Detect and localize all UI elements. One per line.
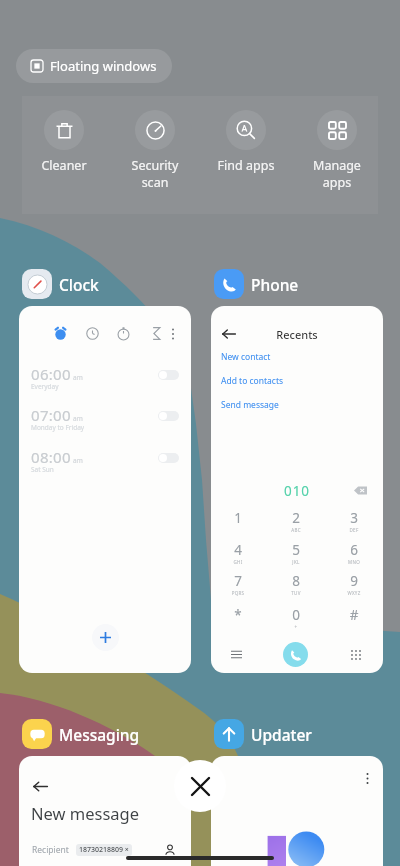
staticText: 5 (276, 541, 316, 559)
staticText: 6 (334, 541, 374, 559)
staticText: Monday to Friday (31, 423, 85, 432)
staticText: ABC (276, 527, 316, 533)
staticText: am (73, 414, 83, 423)
button[interactable]: 0 (276, 606, 316, 634)
button[interactable]: Find apps (202, 110, 290, 174)
staticText: 0 (276, 606, 316, 624)
staticText: Phone (251, 274, 299, 295)
button[interactable]: Add alarm (92, 624, 119, 651)
button[interactable]: 9 (334, 572, 374, 600)
button[interactable]: 07:00 (19, 405, 191, 443)
button[interactable]: Call (283, 642, 308, 667)
staticText: Recipient (32, 844, 69, 856)
staticText: Clock (59, 274, 99, 295)
staticText: PQRS (218, 590, 258, 596)
button[interactable]: * (218, 606, 258, 634)
staticText: TUV (276, 590, 316, 596)
button[interactable]: 6 (334, 541, 374, 569)
button[interactable]: Messaging (22, 719, 140, 749)
button[interactable]: Contacts (162, 842, 178, 858)
button[interactable]: 1 (218, 509, 258, 537)
staticText: Recents (211, 327, 383, 342)
button[interactable]: Back (218, 323, 240, 345)
staticText: 1 (218, 509, 258, 527)
button[interactable]: Close all (174, 760, 226, 812)
staticText: Security scan (111, 157, 199, 191)
staticText: 010 (211, 482, 383, 500)
button[interactable]: 4 (218, 541, 258, 569)
staticText: 3 (334, 509, 374, 527)
staticText: Updater (251, 724, 312, 745)
staticText: am (73, 456, 83, 465)
staticText: Cleaner (20, 157, 108, 174)
button[interactable]: Toggle alarm (158, 370, 179, 380)
button[interactable]: 2 (276, 509, 316, 537)
staticText: Find apps (202, 157, 290, 174)
button[interactable]: More options (166, 327, 180, 341)
staticText: MNO (334, 559, 374, 565)
button[interactable]: Tab (112, 322, 134, 344)
button[interactable]: Back (28, 774, 52, 798)
button[interactable]: # (334, 606, 374, 634)
staticText: 2 (276, 509, 316, 527)
button[interactable]: Back (19, 756, 191, 866)
button[interactable]: Toggle alarm (158, 411, 179, 421)
staticText: 9 (334, 572, 374, 590)
staticText: 08:00 (31, 447, 71, 467)
button[interactable]: New contact (221, 351, 271, 363)
staticText: 07:00 (31, 405, 71, 425)
staticText: WXYZ (334, 590, 374, 596)
staticText: New message (31, 802, 140, 824)
button[interactable]: 06:00 (19, 364, 191, 402)
button[interactable]: Menu (226, 644, 247, 665)
button[interactable]: Tab (81, 322, 103, 344)
staticText: 18730218809 × (79, 845, 129, 855)
staticText: Messaging (59, 724, 140, 745)
staticText: 06:00 (31, 364, 71, 384)
staticText: 4 (218, 541, 258, 559)
staticText: Floating windows (50, 57, 157, 75)
button[interactable]: Tab (49, 322, 71, 344)
button[interactable]: Keypad (345, 644, 366, 665)
staticText: 7 (218, 572, 258, 590)
button[interactable]: Phone (214, 269, 299, 299)
button[interactable]: Backspace (351, 481, 369, 499)
button[interactable]: 08:00 (19, 447, 191, 485)
staticText: * (218, 606, 258, 624)
staticText: # (334, 606, 374, 624)
staticText: 8 (276, 572, 316, 590)
button[interactable]: 8 (276, 572, 316, 600)
button[interactable]: Tab (145, 322, 167, 344)
button[interactable]: 7 (218, 572, 258, 600)
button[interactable]: Send message (221, 399, 279, 411)
button[interactable]: More options (211, 756, 383, 866)
button[interactable]: Cleaner (20, 110, 108, 174)
button[interactable]: Updater (214, 719, 312, 749)
button[interactable]: More options (359, 770, 375, 786)
staticText: JKL (276, 559, 316, 565)
staticText: DEF (334, 527, 374, 533)
staticText: GHI (218, 559, 258, 565)
staticText: Sat Sun (31, 465, 54, 474)
button[interactable]: Floating windows (16, 49, 172, 83)
staticText: Manage apps (293, 157, 381, 191)
staticText: Everyday (31, 382, 59, 391)
button[interactable]: Back (211, 306, 383, 673)
button[interactable]: Add to contacts (221, 375, 284, 387)
staticText: + (276, 624, 316, 630)
button[interactable]: 18730218809 × (76, 844, 132, 856)
button[interactable]: Manage apps (293, 110, 381, 191)
button[interactable]: Clock (22, 269, 99, 299)
staticText: am (73, 373, 83, 382)
button[interactable]: 5 (276, 541, 316, 569)
button[interactable]: Toggle alarm (158, 453, 179, 463)
button[interactable]: Security scan (111, 110, 199, 191)
button[interactable]: Tab (19, 306, 191, 673)
button[interactable]: 3 (334, 509, 374, 537)
